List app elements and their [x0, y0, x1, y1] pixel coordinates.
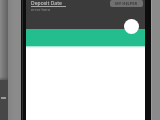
staticText: error here — [31, 7, 51, 12]
button[interactable]: MY HELPER — [110, 0, 143, 7]
button[interactable] — [124, 19, 139, 34]
staticText: Deposit Date — [31, 0, 62, 7]
staticText: MY HELPER — [115, 1, 138, 6]
